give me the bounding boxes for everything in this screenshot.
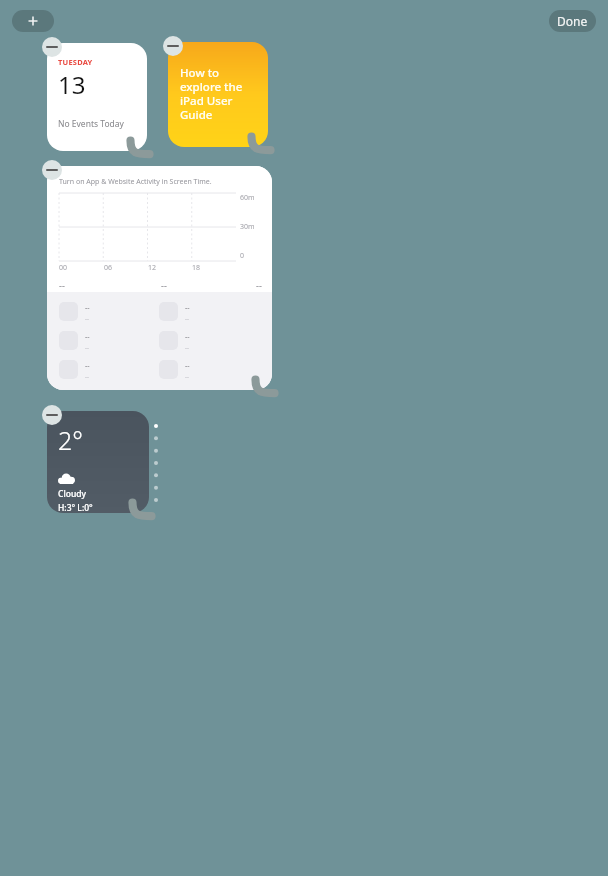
staticText: --	[161, 279, 167, 291]
button[interactable]: Resize widget	[244, 123, 278, 157]
staticText: Done	[557, 13, 588, 29]
button[interactable]: Remove widget	[42, 37, 62, 57]
staticText: How to explore the iPad User Guide	[180, 65, 260, 122]
staticText: --	[85, 373, 89, 381]
staticText: 00	[59, 263, 68, 273]
staticText: Turn on App & Website Activity in Screen…	[59, 177, 212, 187]
staticText: --	[185, 344, 189, 352]
staticText: 18	[192, 263, 201, 273]
button[interactable]: Resize widget	[125, 489, 159, 523]
staticText: H:3° L:0°	[58, 502, 93, 513]
staticText: --	[85, 315, 89, 323]
staticText: --	[85, 361, 90, 371]
button[interactable]: Remove widget	[163, 36, 183, 56]
button[interactable]: Remove widget	[42, 160, 62, 180]
button[interactable]: Resize widget	[248, 366, 282, 400]
button[interactable]: Resize widget	[123, 127, 157, 161]
staticText: 13	[58, 68, 86, 101]
staticText: --	[185, 303, 190, 313]
staticText: No Events Today	[58, 118, 124, 130]
staticText: --	[185, 361, 190, 371]
staticText: 12	[148, 263, 157, 273]
staticText: --	[85, 332, 90, 342]
staticText: 0	[240, 251, 245, 261]
staticText: --	[185, 332, 190, 342]
staticText: 06	[104, 263, 113, 273]
staticText: TUESDAY	[58, 57, 93, 67]
button[interactable]: Turn on App & Website Activity in Screen…	[47, 166, 272, 390]
button[interactable]: 2°	[47, 411, 149, 513]
staticText: --	[185, 315, 189, 323]
button[interactable]: Remove widget	[42, 405, 62, 425]
button[interactable]: How to explore the iPad User Guide	[168, 42, 268, 147]
button[interactable]: TUESDAY	[47, 43, 147, 151]
staticText: 60m	[240, 193, 255, 203]
staticText: --	[59, 279, 65, 291]
staticText: Cloudy	[58, 488, 86, 500]
staticText: 2°	[58, 423, 83, 457]
staticText: --	[85, 303, 90, 313]
staticText: --	[256, 279, 262, 291]
staticText: --	[185, 373, 189, 381]
button[interactable]: Add widget	[12, 10, 54, 32]
staticText: 30m	[240, 222, 255, 232]
staticText: --	[85, 344, 89, 352]
button[interactable]: Done	[549, 10, 596, 32]
